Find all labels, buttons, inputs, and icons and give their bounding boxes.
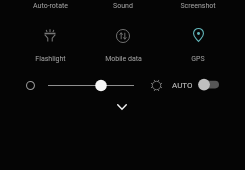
staticText: GPS xyxy=(191,55,205,63)
staticText: Flashlight xyxy=(35,55,66,63)
staticText: Screenshot xyxy=(180,2,216,10)
button[interactable]: Raise brightness xyxy=(144,73,168,97)
button[interactable]: Expand quick settings xyxy=(107,98,136,115)
button[interactable]: Mobile data xyxy=(100,13,146,59)
button[interactable]: GPS xyxy=(175,12,221,58)
staticText: Mobile data xyxy=(105,55,142,63)
button[interactable]: Lower brightness xyxy=(18,73,42,97)
button[interactable]: Brightness xyxy=(42,76,142,95)
staticText: Sound xyxy=(113,2,133,10)
staticText: Auto-rotate xyxy=(33,2,68,10)
button[interactable]: Auto brightness toggle xyxy=(194,74,226,95)
staticText: AUTO xyxy=(172,81,193,90)
button[interactable]: Flashlight xyxy=(27,12,73,58)
